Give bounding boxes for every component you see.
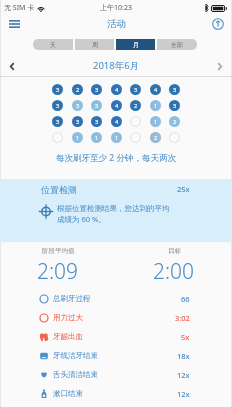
staticText: 1	[115, 134, 119, 141]
staticText: 1	[95, 134, 99, 141]
staticText: 每次刷牙至少 2 分钟，每天两次	[0, 152, 232, 164]
staticText: 66	[181, 294, 190, 304]
staticText: 3	[76, 118, 80, 125]
staticText: 3	[56, 102, 60, 109]
button[interactable]: 周	[75, 39, 114, 50]
button[interactable]: 3	[130, 84, 141, 95]
staticText: 3	[134, 86, 138, 93]
button[interactable]: 3	[91, 100, 102, 111]
button[interactable]: 4	[111, 116, 122, 127]
staticText: 1	[154, 118, 158, 125]
button[interactable]: 1	[72, 132, 83, 143]
staticText: 3	[56, 86, 60, 93]
staticText: 3	[173, 86, 177, 93]
staticText: 2	[134, 102, 138, 109]
button[interactable]: 1	[150, 116, 161, 127]
staticText: 用力过大	[53, 313, 83, 322]
button[interactable]: 2	[150, 132, 161, 143]
staticText: 3	[95, 102, 99, 109]
staticText: 3:02	[175, 313, 190, 323]
staticText: 3	[95, 86, 99, 93]
staticText: 2:00	[153, 257, 195, 286]
button[interactable]: 漱口结束	[39, 384, 190, 403]
staticText: 3	[56, 118, 60, 125]
button[interactable]: 全部	[157, 39, 197, 50]
staticText: 1	[154, 102, 158, 109]
staticText: 阶段平均值	[42, 247, 75, 255]
staticText: 3	[95, 118, 99, 125]
button[interactable]: Share	[208, 15, 228, 33]
button[interactable]: 3	[91, 84, 102, 95]
button[interactable]: 用力过大	[39, 308, 190, 327]
staticText: 位置检测	[41, 184, 77, 195]
button[interactable]: 3	[52, 100, 63, 111]
button[interactable]: 1	[111, 132, 122, 143]
button[interactable]: 4	[150, 84, 161, 95]
staticText: 天	[50, 41, 56, 49]
button[interactable]: 2	[72, 84, 83, 95]
staticText: 全部	[171, 41, 183, 49]
staticText: 根据位置检测结果，您达到的平均 成绩为 60 %。	[57, 204, 170, 224]
button[interactable]: 3	[52, 116, 63, 127]
staticText: 2	[173, 118, 177, 125]
button[interactable]: 4	[111, 100, 122, 111]
staticText: 无 SIM 卡	[4, 3, 35, 13]
staticText: 4	[115, 102, 119, 109]
staticText: 周	[92, 41, 98, 49]
staticText: 2	[154, 134, 158, 141]
button[interactable]: 月	[116, 39, 155, 50]
button[interactable]: 2	[169, 116, 180, 127]
staticText: 1	[76, 134, 80, 141]
staticText: 总刷牙过程	[53, 294, 91, 303]
button[interactable]: 牙线洁牙结束	[39, 346, 190, 365]
button[interactable]: Previous month	[4, 58, 20, 74]
button[interactable]	[169, 132, 180, 143]
staticText: 活动	[107, 18, 126, 30]
staticText: 2018年6月	[93, 59, 140, 72]
button[interactable]: 天	[33, 39, 73, 50]
staticText: 2:09	[37, 257, 79, 286]
button[interactable]: 牙龈出血	[39, 327, 190, 346]
staticText: 25x	[177, 184, 190, 194]
staticText: 3	[76, 102, 80, 109]
button[interactable]: 3	[169, 84, 180, 95]
button[interactable]: 2	[130, 100, 141, 111]
button[interactable]: 1	[91, 132, 102, 143]
staticText: 5x	[181, 332, 190, 342]
staticText: 4	[154, 86, 158, 93]
staticText: 牙线洁牙结束	[53, 351, 98, 360]
staticText: 上午10:23	[100, 3, 132, 13]
staticText: 2	[76, 86, 80, 93]
staticText: 3	[173, 102, 177, 109]
staticText: 12x	[177, 370, 190, 380]
button[interactable]: 4	[111, 84, 122, 95]
button[interactable]: 3	[52, 84, 63, 95]
button[interactable]: 3	[72, 100, 83, 111]
staticText: 4	[115, 86, 119, 93]
staticText: 目标	[168, 247, 181, 255]
button[interactable]: 3	[91, 116, 102, 127]
button[interactable]: 3	[72, 116, 83, 127]
staticText: 月	[133, 41, 139, 49]
button[interactable]: 3	[169, 100, 180, 111]
button[interactable]: 舌头清洁结束	[39, 365, 190, 384]
staticText: 18x	[177, 351, 190, 361]
staticText: 4	[115, 118, 119, 125]
staticText: 舌头清洁结束	[53, 370, 98, 379]
staticText: 牙龈出血	[53, 332, 83, 341]
button[interactable]: 1	[150, 100, 161, 111]
staticText: 12x	[177, 389, 190, 399]
button[interactable]: Menu	[4, 15, 24, 33]
staticText: 漱口结束	[53, 389, 83, 398]
button[interactable]	[52, 132, 63, 143]
button[interactable]: Next month	[212, 58, 228, 74]
button[interactable]	[130, 116, 141, 127]
button[interactable]	[130, 132, 141, 143]
button[interactable]: 总刷牙过程	[39, 289, 190, 308]
button[interactable]: 位置检测	[41, 179, 190, 199]
